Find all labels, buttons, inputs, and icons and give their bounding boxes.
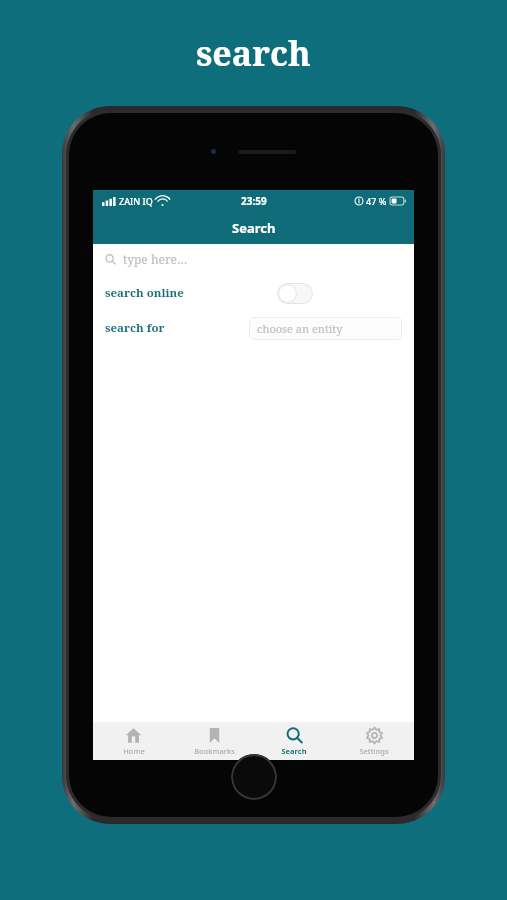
staticText: type here… xyxy=(123,251,188,267)
button[interactable]: search for xyxy=(93,314,414,342)
other: Home button xyxy=(231,754,277,800)
button[interactable]: search online xyxy=(93,280,414,306)
staticText: search for xyxy=(105,320,165,336)
button[interactable]: type here… xyxy=(93,244,414,274)
staticText: Home xyxy=(123,746,145,756)
staticText: choose an entity xyxy=(257,321,343,336)
button[interactable]: Bookmarks xyxy=(174,722,254,760)
staticText: 23:59 xyxy=(241,194,267,208)
button[interactable]: Settings xyxy=(334,722,414,760)
staticText: Settings xyxy=(359,746,389,756)
button[interactable]: Search xyxy=(254,722,334,760)
staticText: search xyxy=(196,30,311,76)
staticText: Search xyxy=(232,219,276,237)
staticText: Bookmarks xyxy=(194,746,235,756)
staticText: 47 % xyxy=(366,195,387,207)
staticText: ZAIN IQ xyxy=(119,195,153,207)
staticText: Search xyxy=(281,746,307,756)
button[interactable]: Home xyxy=(93,722,174,760)
staticText: search online xyxy=(105,285,184,301)
